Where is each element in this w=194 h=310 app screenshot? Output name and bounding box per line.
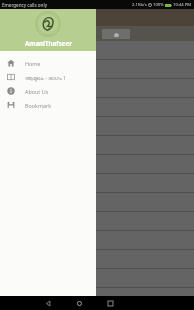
- button[interactable]: [0, 212, 194, 231]
- button[interactable]: [0, 98, 194, 117]
- button[interactable]: Recents: [103, 296, 117, 310]
- button[interactable]: കൂ: [102, 29, 130, 39]
- button[interactable]: Bookmark: [0, 98, 96, 112]
- button[interactable]: [0, 136, 194, 155]
- button[interactable]: [0, 250, 194, 269]
- button[interactable]: Home: [72, 296, 86, 310]
- staticText: About Us: [25, 88, 49, 95]
- staticText: Home: [25, 60, 41, 67]
- button[interactable]: [0, 193, 194, 212]
- staticText: Emergency calls only: [2, 2, 47, 8]
- staticText: AmaniThafseer: [25, 39, 72, 47]
- button[interactable]: ആമുഖം - ഭാഗം 1: [0, 70, 96, 84]
- button[interactable]: [0, 117, 194, 136]
- staticText: 2.1Kb/s: [132, 2, 147, 8]
- button[interactable]: [0, 174, 194, 193]
- staticText: ആമുഖം - ഭാഗം 1: [25, 74, 67, 81]
- staticText: കൂ: [114, 32, 119, 37]
- button[interactable]: Home: [0, 56, 96, 70]
- button[interactable]: [0, 79, 194, 98]
- button[interactable]: [0, 155, 194, 174]
- staticText: 10:44 PM: [173, 2, 192, 8]
- staticText: 100%: [153, 2, 164, 8]
- button[interactable]: About Us: [0, 84, 96, 98]
- button[interactable]: Back: [41, 296, 55, 310]
- button[interactable]: [0, 41, 194, 60]
- button[interactable]: [0, 231, 194, 250]
- staticText: Bookmark: [25, 102, 52, 109]
- button[interactable]: [0, 269, 194, 288]
- button[interactable]: [0, 60, 194, 79]
